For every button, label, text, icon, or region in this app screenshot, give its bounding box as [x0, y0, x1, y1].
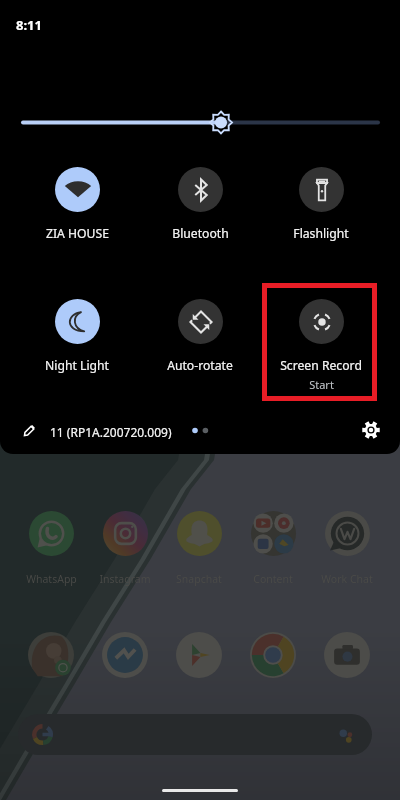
button[interactable]: Play Store	[176, 632, 222, 678]
button[interactable]: Contact	[28, 632, 74, 678]
button[interactable]: Search	[18, 714, 372, 755]
button[interactable]: Bluetooth	[140, 163, 260, 242]
button[interactable]: Camera	[324, 632, 370, 678]
button[interactable]: ZIA HOUSE	[17, 163, 137, 242]
staticText: Work Chat	[321, 572, 373, 586]
staticText: Start	[309, 377, 334, 392]
button[interactable]: Brightness	[0, 0, 400, 454]
staticText: Flashlight	[293, 225, 349, 242]
button[interactable]: Work Chat	[311, 511, 383, 586]
button[interactable]: Snapchat	[163, 511, 235, 586]
staticText: Night Light	[45, 357, 109, 374]
button[interactable]: Night Light	[17, 295, 137, 374]
button[interactable]: WhatsApp	[15, 511, 87, 586]
staticText: Screen Record	[280, 357, 362, 374]
staticText: WhatsApp	[26, 572, 77, 586]
staticText: Snapchat	[176, 572, 222, 586]
staticText: Content	[253, 572, 293, 586]
staticText: Auto-rotate	[167, 357, 233, 374]
staticText: 8:11	[16, 16, 42, 34]
staticText: 11 (RP1A.200720.009)	[50, 424, 172, 440]
staticText: Bluetooth	[172, 225, 229, 242]
button[interactable]: Flashlight	[261, 163, 381, 242]
button[interactable]: Edit tiles	[21, 423, 37, 439]
staticText: ZIA HOUSE	[46, 225, 109, 242]
button[interactable]: Messenger	[102, 632, 148, 678]
button[interactable]: Auto-rotate	[140, 295, 260, 374]
staticText: Instagram	[99, 572, 151, 586]
button[interactable]: Instagram	[89, 511, 161, 586]
button[interactable]: Chrome	[250, 632, 296, 678]
button[interactable]: Settings	[362, 421, 380, 439]
button[interactable]: Content	[237, 511, 309, 586]
button[interactable]: Screen Record	[261, 295, 381, 392]
